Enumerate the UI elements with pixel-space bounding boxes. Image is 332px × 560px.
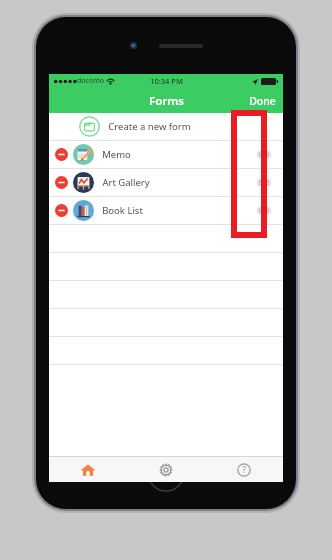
staticText: Forms: [149, 93, 184, 109]
staticText: 10:34 PM: [150, 76, 183, 86]
staticText: Book List: [102, 204, 143, 217]
button[interactable]: Done: [242, 90, 283, 112]
button[interactable]: Settings: [127, 457, 205, 482]
button[interactable]: Delete Book List: [55, 204, 68, 217]
button[interactable]: Delete Memo: [55, 148, 68, 161]
staticText: Memo: [102, 148, 131, 161]
button[interactable]: Reorder Memo: [257, 151, 271, 158]
button[interactable]: Create a new form: [49, 113, 283, 140]
button[interactable]: Reorder Book List: [257, 207, 271, 214]
button[interactable]: Delete Art Gallery: [55, 176, 68, 189]
staticText: ?: [242, 464, 246, 476]
staticText: Create a new form: [108, 120, 191, 133]
button[interactable]: Home: [49, 457, 127, 482]
button[interactable]: Delete Art Gallery: [49, 169, 283, 196]
button[interactable]: Delete Book List: [49, 197, 283, 224]
staticText: Art Gallery: [102, 176, 150, 189]
button[interactable]: Reorder Art Gallery: [257, 179, 271, 186]
button[interactable]: Help: [205, 457, 283, 482]
button[interactable]: Delete Memo: [49, 141, 283, 168]
staticText: docomo: [77, 76, 104, 86]
staticText: Done: [249, 94, 276, 108]
